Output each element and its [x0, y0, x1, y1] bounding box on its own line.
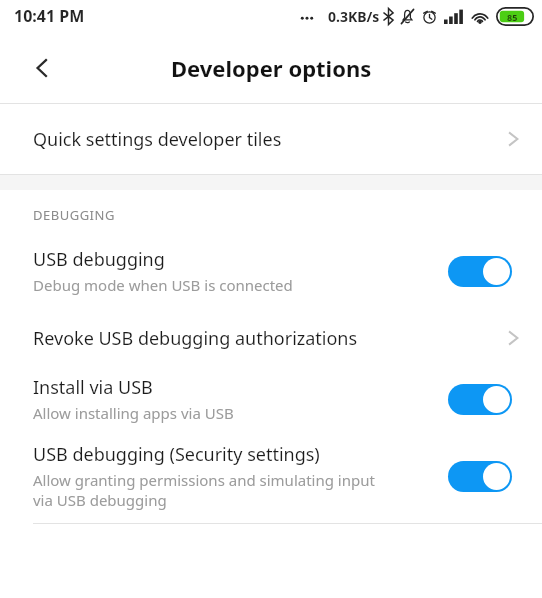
staticText: Install via USB: [33, 375, 153, 400]
button[interactable]: Toggle: [448, 461, 512, 492]
staticText: Revoke USB debugging authorizations: [33, 326, 507, 351]
button[interactable]: USB debugging: [0, 245, 542, 297]
staticText: Developer options: [171, 53, 372, 83]
staticText: DEBUGGING: [33, 206, 115, 224]
staticText: USB debugging: [33, 247, 165, 272]
button[interactable]: Back: [18, 44, 66, 92]
staticText: USB debugging (Security settings): [33, 442, 320, 467]
staticText: 85: [507, 11, 518, 23]
button[interactable]: Revoke USB debugging authorizations: [0, 310, 542, 366]
staticText: Allow granting permissions and simulatin…: [33, 470, 375, 490]
button[interactable]: Quick settings developer tiles: [0, 104, 542, 174]
staticText: 0.3KB/s: [328, 7, 380, 26]
button[interactable]: USB debugging (Security settings): [0, 440, 542, 512]
button[interactable]: Toggle: [448, 256, 512, 287]
staticText: via USB debugging: [33, 490, 167, 510]
staticText: Allow installing apps via USB: [33, 403, 234, 423]
staticText: Quick settings developer tiles: [33, 127, 507, 152]
staticText: Debug mode when USB is connected: [33, 275, 293, 295]
button[interactable]: Install via USB: [0, 373, 542, 425]
staticText: 10:41 PM: [14, 5, 85, 27]
button[interactable]: Toggle: [448, 384, 512, 415]
